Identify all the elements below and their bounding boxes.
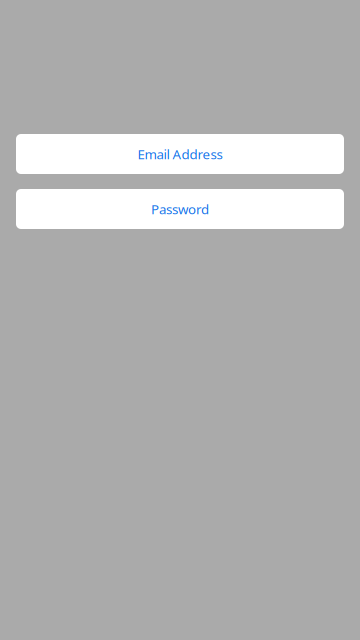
button[interactable]: Password	[16, 189, 344, 229]
staticText: Email Address	[137, 145, 222, 163]
button[interactable]: Email Address	[16, 134, 344, 174]
staticText: Password	[151, 200, 209, 218]
